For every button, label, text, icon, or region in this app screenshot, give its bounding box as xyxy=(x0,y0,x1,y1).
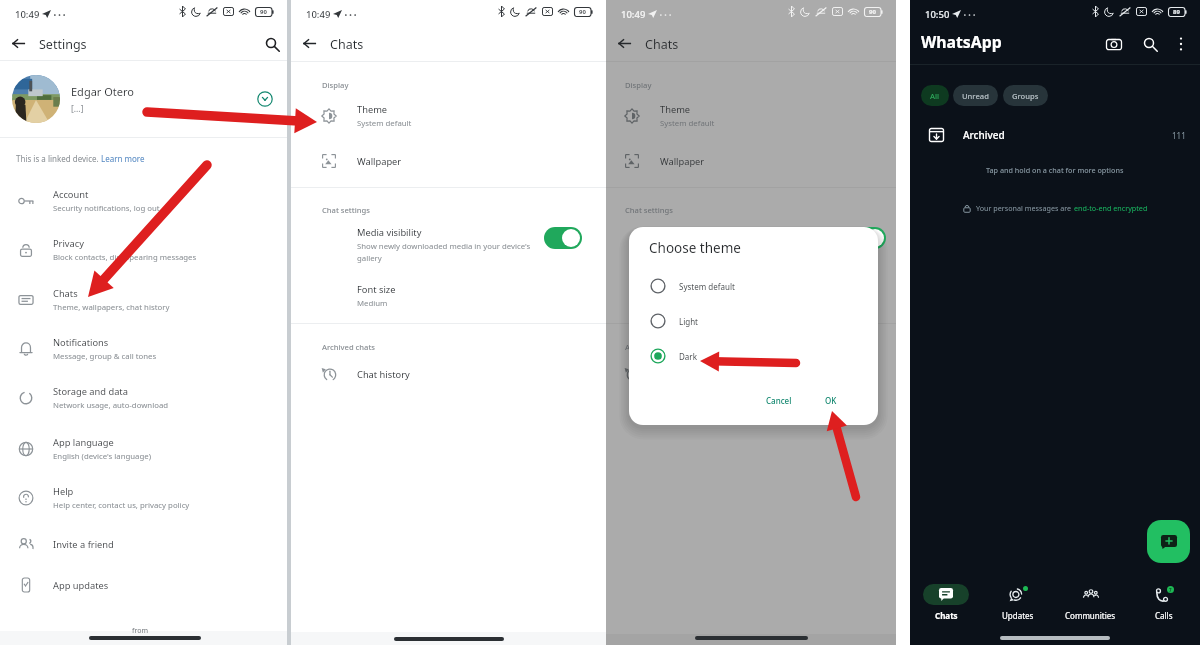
button[interactable]: Search xyxy=(265,37,280,52)
staticText: Edgar Otero xyxy=(71,84,134,99)
staticText: 10:50 xyxy=(925,8,950,21)
staticText: English (device's language) xyxy=(53,451,151,462)
staticText: Light xyxy=(679,316,699,327)
staticText: WhatsApp xyxy=(921,31,1002,53)
staticText: Media visibility xyxy=(660,226,725,239)
staticText: Show newly downloaded media in your devi… xyxy=(660,241,845,263)
button[interactable]: Dark xyxy=(629,341,878,371)
staticText: 10:49 xyxy=(306,8,331,21)
staticText: Dark xyxy=(679,351,697,362)
button[interactable]: Wallpaper xyxy=(606,143,896,179)
button[interactable]: Font size xyxy=(291,283,606,309)
button[interactable]: Camera xyxy=(1106,37,1122,51)
button[interactable]: Chat history xyxy=(606,358,896,390)
staticText: Network usage, auto-download xyxy=(53,400,169,411)
button[interactable]: More options xyxy=(1176,36,1186,52)
button[interactable]: Updates xyxy=(982,584,1054,626)
staticText: Theme xyxy=(357,103,388,116)
staticText: Font size xyxy=(357,283,396,296)
staticText: Chats xyxy=(935,610,958,621)
staticText: App updates xyxy=(53,579,109,592)
staticText: 10:49 xyxy=(15,8,40,21)
staticText: Show newly downloaded media in your devi… xyxy=(357,241,542,263)
staticText: 90 xyxy=(260,8,267,16)
button[interactable]: Storage and data xyxy=(0,374,287,422)
staticText: Chat settings xyxy=(322,205,370,215)
staticText: Display xyxy=(625,80,652,90)
button[interactable]: Media visibility toggle xyxy=(544,227,582,249)
staticText: App language xyxy=(53,436,114,449)
staticText: Chats xyxy=(645,36,679,53)
staticText: Chats xyxy=(330,36,364,53)
staticText: Chat history xyxy=(357,368,410,381)
staticText: Settings xyxy=(39,36,87,53)
button[interactable]: Privacy xyxy=(0,226,287,274)
button[interactable]: Back xyxy=(303,38,316,49)
button[interactable]: Theme xyxy=(291,98,606,134)
button[interactable]: Search xyxy=(1143,37,1158,52)
button[interactable]: Chats xyxy=(910,584,982,626)
staticText: Block contacts, disappearing messages xyxy=(53,252,197,263)
staticText: Font size xyxy=(660,283,699,296)
staticText: Security notifications, log out xyxy=(53,203,160,214)
staticText: 10:49 xyxy=(621,8,646,21)
button[interactable]: Groups xyxy=(1003,85,1048,106)
button[interactable]: Edgar Otero xyxy=(0,61,287,137)
button[interactable]: Light xyxy=(629,306,878,336)
staticText: Communities xyxy=(1065,610,1116,621)
button[interactable]: Expand profile xyxy=(256,90,274,108)
staticText: Theme xyxy=(660,103,691,116)
staticText: Archived xyxy=(963,128,1005,142)
staticText: System default xyxy=(679,281,735,292)
staticText: This is a linked device. xyxy=(16,153,101,164)
button[interactable]: App updates xyxy=(0,561,287,609)
button[interactable]: Media visibility xyxy=(606,226,896,263)
staticText: System default xyxy=(660,118,715,129)
staticText: Calls xyxy=(1155,610,1173,621)
staticText: from xyxy=(132,626,148,636)
staticText: end-to-end encrypted xyxy=(1074,203,1148,213)
button[interactable]: Chats xyxy=(0,276,287,324)
staticText: Privacy xyxy=(53,237,85,250)
staticText: Theme, wallpapers, chat history xyxy=(53,302,170,313)
button[interactable]: Notifications xyxy=(0,325,287,373)
staticText: Invite a friend xyxy=(53,538,114,551)
staticText: Medium xyxy=(357,298,388,309)
button[interactable]: Help xyxy=(0,474,287,522)
button[interactable]: Media visibility toggle xyxy=(848,227,886,249)
staticText: Message, group & call tones xyxy=(53,351,157,362)
staticText: Learn more xyxy=(101,153,145,164)
button[interactable]: App language xyxy=(0,425,287,473)
staticText: Cancel xyxy=(766,395,792,406)
staticText: Unread xyxy=(962,91,989,101)
button[interactable]: System default xyxy=(629,271,878,301)
button[interactable]: Account xyxy=(0,177,287,225)
staticText: Tap and hold on a chat for more options xyxy=(986,165,1124,175)
staticText: Archived chats xyxy=(322,342,376,352)
button[interactable]: Theme xyxy=(606,98,896,134)
button[interactable]: Wallpaper xyxy=(291,143,606,179)
button[interactable]: OK xyxy=(815,390,847,410)
staticText: Updates xyxy=(1002,610,1034,621)
button[interactable]: Cancel xyxy=(756,390,802,410)
button[interactable]: Back xyxy=(618,38,631,49)
staticText: Wallpaper xyxy=(660,155,705,168)
button[interactable]: Invite a friend xyxy=(0,520,287,568)
button[interactable]: Unread xyxy=(953,85,998,106)
button[interactable]: Media visibility xyxy=(291,226,606,263)
button[interactable]: Back xyxy=(12,38,25,49)
button[interactable]: Communities xyxy=(1054,584,1127,626)
button[interactable]: Archived xyxy=(910,117,1200,153)
button[interactable]: All xyxy=(921,85,949,106)
staticText: Wallpaper xyxy=(357,155,402,168)
staticText: Storage and data xyxy=(53,385,128,398)
staticText: [...] xyxy=(71,103,84,115)
button[interactable]: Font size xyxy=(606,283,896,309)
staticText: 89 xyxy=(1173,8,1180,16)
staticText: Media visibility xyxy=(357,226,422,239)
button[interactable]: 7 xyxy=(1127,584,1200,626)
staticText: 90 xyxy=(579,8,586,16)
staticText: OK xyxy=(825,395,837,406)
button[interactable]: New chat xyxy=(1147,520,1190,563)
button[interactable]: Chat history xyxy=(291,358,606,390)
